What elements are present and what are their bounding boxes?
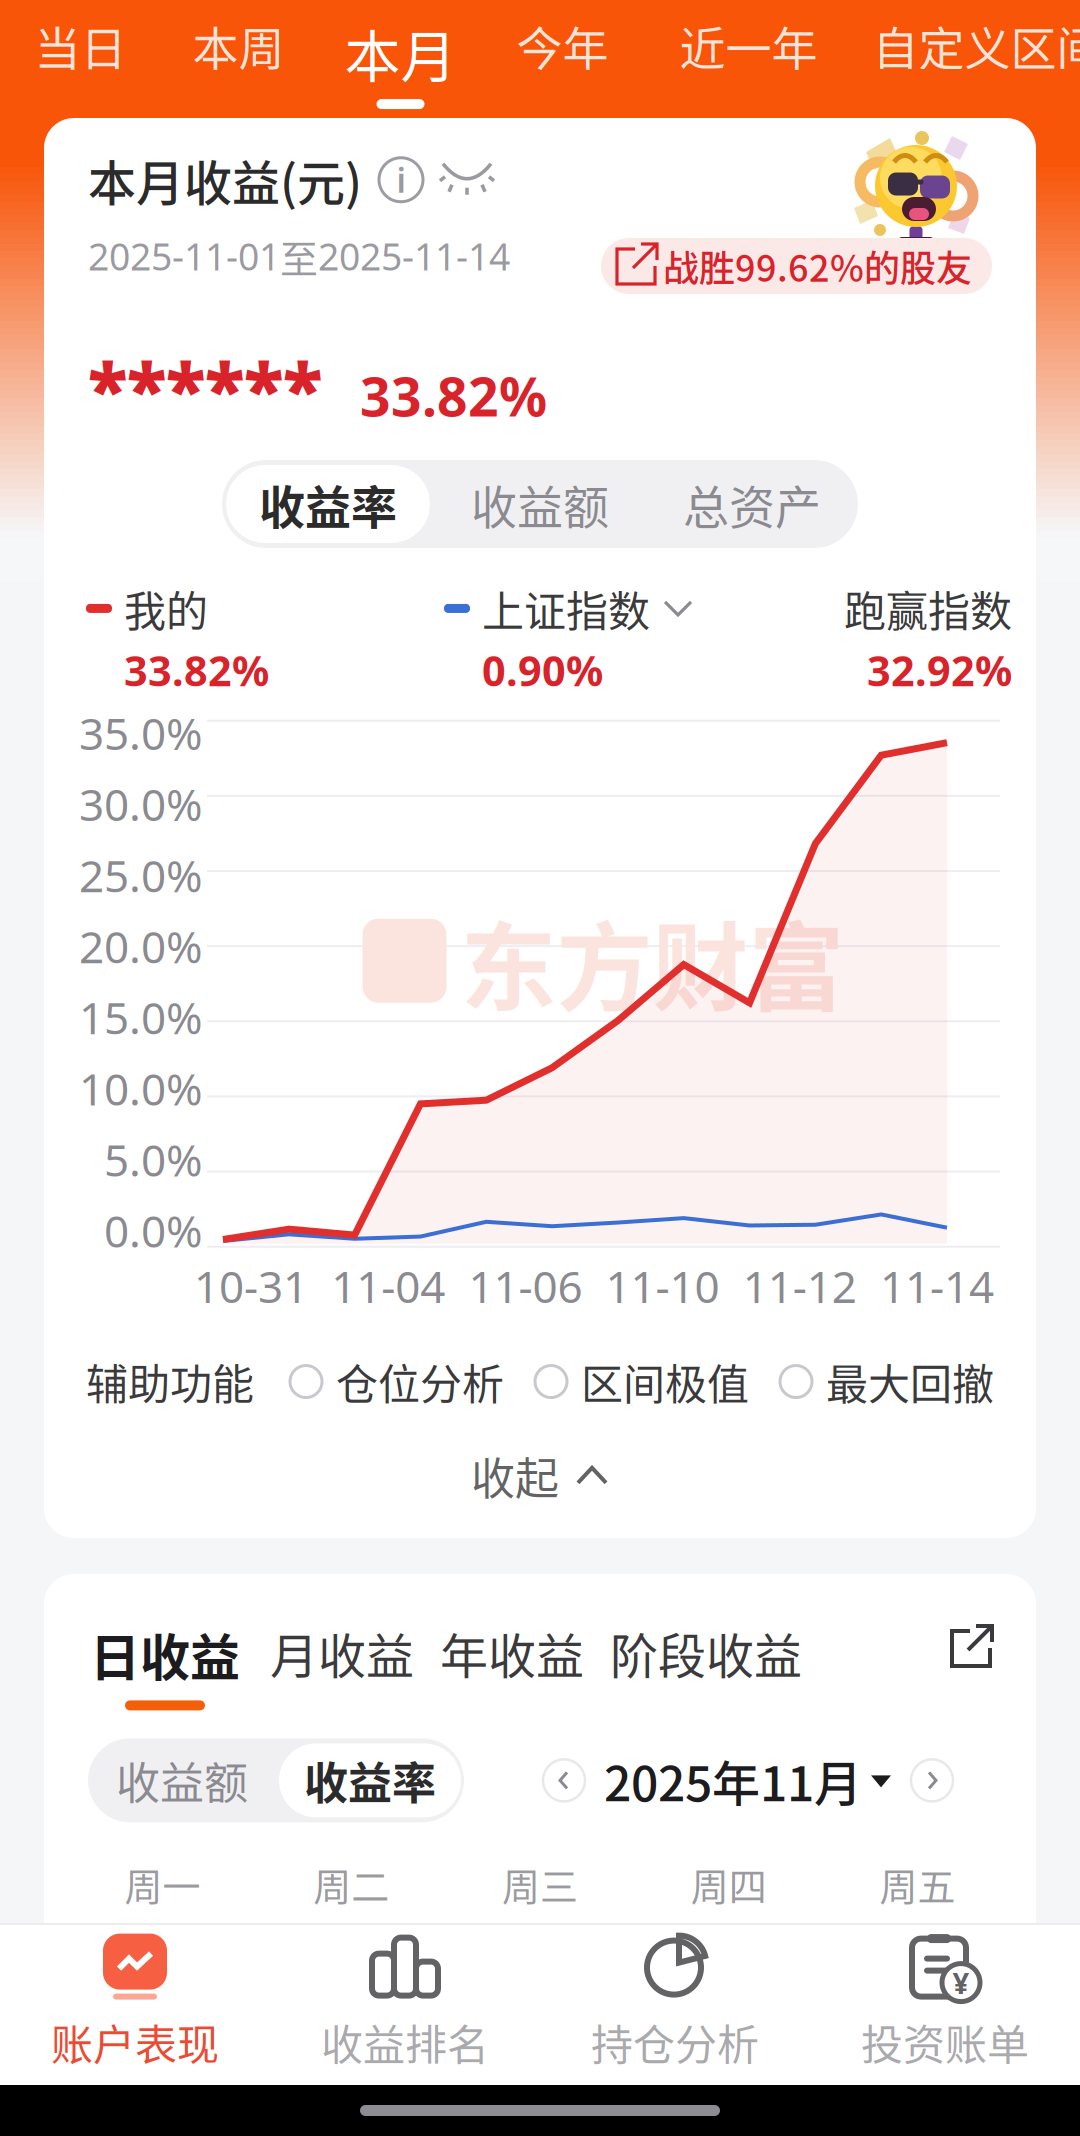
button[interactable]: 收益额	[434, 460, 646, 548]
button[interactable]: 收起	[471, 1444, 609, 1508]
staticText: 20.0%	[79, 917, 203, 975]
staticText: 33.82%	[360, 360, 547, 431]
staticText: 收益额	[116, 1748, 248, 1812]
button[interactable]: 阶段收益	[608, 1618, 804, 1707]
staticText: 周一	[124, 1856, 200, 1911]
staticText: 日收益	[90, 1618, 240, 1690]
staticText: 辅助功能	[86, 1351, 254, 1412]
button[interactable]: 收益率	[276, 1738, 464, 1822]
staticText: 战胜99.62%的股友	[663, 240, 972, 292]
button[interactable]: 今年	[480, 0, 644, 118]
staticText: 5.0%	[104, 1130, 203, 1189]
staticText: 本周	[192, 12, 284, 79]
staticText: 跑赢指数	[844, 578, 1012, 639]
staticText: 32.92%	[867, 643, 1012, 698]
button[interactable]: 分享	[944, 1620, 1000, 1676]
staticText: 最大回撤	[826, 1351, 994, 1412]
staticText: ¥	[952, 1963, 969, 2002]
staticText: 上证指数	[482, 578, 650, 639]
staticText: 周三	[502, 1856, 578, 1911]
button[interactable]: 月收益	[268, 1618, 416, 1707]
staticText: 近一年	[679, 12, 817, 79]
staticText: 本月收益(元)	[88, 145, 362, 214]
button[interactable]: 收益额	[88, 1738, 276, 1822]
button[interactable]: 持仓分析	[540, 1923, 810, 2085]
staticText: 收起	[471, 1444, 559, 1508]
staticText: i	[396, 158, 405, 202]
staticText: 年收益	[440, 1618, 584, 1687]
button[interactable]: 本周	[156, 0, 320, 118]
button[interactable]: 2025年11月	[604, 1746, 892, 1815]
staticText: 2025年11月	[604, 1746, 862, 1815]
staticText: 周四	[691, 1856, 767, 1911]
staticText: 30.0%	[79, 775, 203, 833]
staticText: 0.90%	[482, 643, 603, 698]
staticText: 周二	[313, 1856, 389, 1911]
staticText: 我的	[124, 578, 208, 639]
button[interactable]: 下一月	[910, 1758, 954, 1802]
staticText: 收益排名	[321, 2012, 489, 2072]
button[interactable]: 仓位分析	[290, 1351, 504, 1412]
button[interactable]: 年收益	[438, 1618, 586, 1707]
button[interactable]: 账户表现	[0, 1923, 270, 2085]
staticText: 当日	[34, 12, 126, 79]
button[interactable]: 本月	[320, 0, 480, 118]
staticText: 周五	[880, 1856, 956, 1911]
staticText: 总资产	[683, 471, 821, 537]
staticText: 持仓分析	[591, 2012, 759, 2072]
staticText: 10-31	[194, 1257, 308, 1315]
staticText: 11-06	[468, 1257, 582, 1315]
button[interactable]: 收益排名	[270, 1923, 540, 2085]
staticText: 11-04	[331, 1257, 445, 1315]
button[interactable]: 上一月	[542, 1758, 586, 1802]
staticText: 25.0%	[79, 846, 203, 904]
staticText: 阶段收益	[610, 1618, 802, 1687]
button[interactable]: 隐藏金额	[440, 161, 496, 199]
staticText: 收益率	[259, 471, 397, 537]
button[interactable]: 总资产	[646, 460, 858, 548]
staticText: 10.0%	[79, 1059, 203, 1117]
staticText: 0.0%	[104, 1201, 203, 1260]
button[interactable]: 日收益	[86, 1618, 244, 1710]
staticText: 收益率	[304, 1748, 436, 1812]
staticText: 至	[280, 228, 318, 283]
staticText: 15.0%	[79, 988, 203, 1046]
staticText: 本月	[344, 12, 456, 93]
staticText: 自定义区间	[872, 12, 1080, 79]
staticText: 仓位分析	[336, 1351, 504, 1412]
staticText: 东方财富	[460, 891, 844, 1030]
staticText: 33.82%	[124, 643, 269, 698]
staticText: 月收益	[270, 1618, 414, 1687]
staticText: 账户表现	[51, 2012, 219, 2072]
staticText: 区间极值	[581, 1351, 749, 1412]
button[interactable]: 说明	[378, 157, 424, 203]
staticText: 2025-11-14	[318, 231, 510, 281]
staticText: 11-10	[606, 1257, 720, 1315]
staticText: ******	[88, 339, 322, 437]
staticText: 今年	[516, 12, 608, 79]
button[interactable]: 当日	[4, 0, 156, 118]
button[interactable]: 近一年	[644, 0, 852, 118]
staticText: 投资账单	[861, 2012, 1029, 2072]
button[interactable]: ¥	[810, 1923, 1080, 2085]
button[interactable]: 自定义区间	[852, 0, 1080, 118]
staticText: 2025-11-01	[88, 231, 280, 281]
staticText: 收益额	[471, 471, 609, 537]
staticText: 11-14	[880, 1257, 994, 1315]
staticText: 11-12	[743, 1257, 857, 1315]
button[interactable]: 区间极值	[535, 1351, 749, 1412]
button[interactable]: 收益率	[222, 460, 434, 548]
button[interactable]: 最大回撤	[780, 1351, 994, 1412]
staticText: 35.0%	[79, 704, 203, 762]
button[interactable]: 战胜99.62%的股友	[601, 238, 992, 294]
